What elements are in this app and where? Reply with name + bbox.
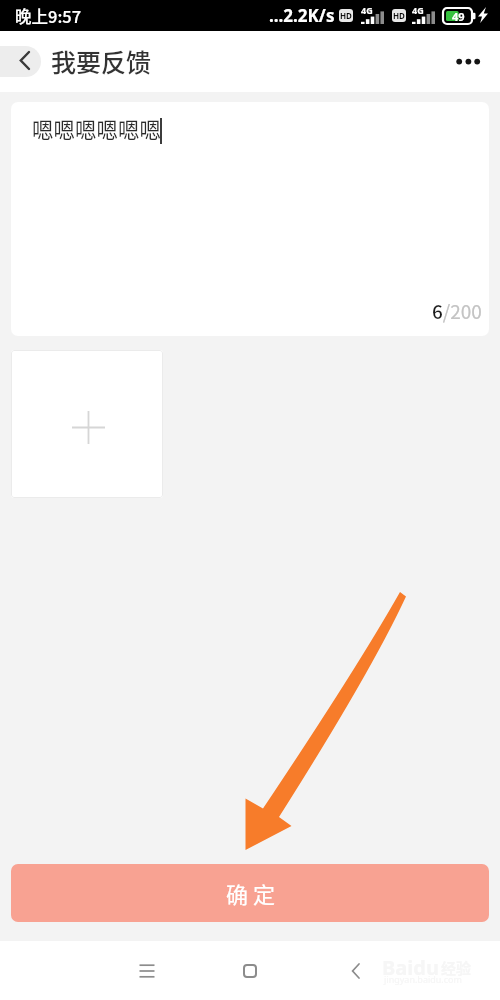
button[interactable]: 确 定 <box>11 864 489 922</box>
button[interactable]: Home <box>220 941 280 1000</box>
staticText: 嗯嗯嗯嗯嗯嗯 <box>32 113 162 144</box>
staticText: 经验 <box>441 957 472 979</box>
staticText: Baidu <box>382 954 439 981</box>
staticText: 我要反馈 <box>51 43 152 79</box>
button[interactable]: Recents <box>117 941 177 1000</box>
staticText: jingyan.baidu.com <box>384 973 462 985</box>
staticText: 4G <box>412 4 424 16</box>
staticText: 确 定 <box>226 877 275 909</box>
button[interactable]: Back <box>325 941 385 1000</box>
staticText: 晚上9:57 <box>15 4 82 28</box>
staticText: 4G <box>361 4 373 16</box>
staticText: HD <box>393 10 405 21</box>
staticText: HD <box>340 10 352 21</box>
button[interactable]: 嗯嗯嗯嗯嗯嗯 <box>11 102 489 336</box>
button[interactable]: Add photo <box>11 350 163 498</box>
staticText: ...2.2K/s <box>269 4 335 27</box>
button[interactable]: Back <box>0 46 41 77</box>
staticText: 6/200 <box>432 297 482 325</box>
staticText: 49 <box>452 9 465 24</box>
button[interactable]: More options <box>444 45 492 79</box>
